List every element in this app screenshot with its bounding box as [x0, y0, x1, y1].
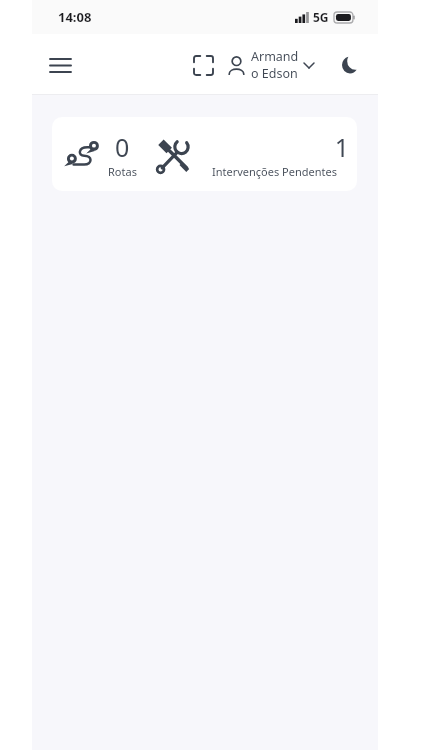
- staticText: Armand: [251, 48, 299, 65]
- button[interactable]: Menu: [38, 43, 82, 87]
- button[interactable]: Scan: [182, 44, 224, 86]
- staticText: 1: [199, 130, 349, 164]
- staticText: Intervenções Pendentes: [212, 164, 337, 179]
- staticText: 0: [115, 130, 130, 164]
- button[interactable]: 0: [52, 117, 357, 191]
- staticText: o Edson: [251, 65, 298, 82]
- staticText: 5G: [313, 9, 329, 25]
- button[interactable]: Toggle dark mode: [328, 43, 372, 87]
- staticText: Rotas: [108, 164, 137, 179]
- button[interactable]: Armand: [224, 41, 318, 89]
- staticText: 14:08: [58, 8, 92, 26]
